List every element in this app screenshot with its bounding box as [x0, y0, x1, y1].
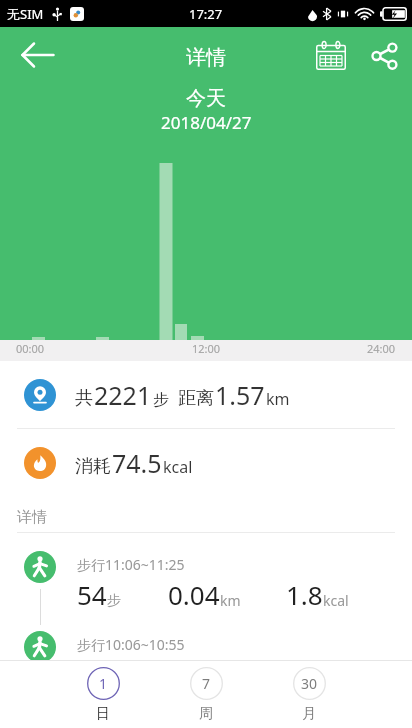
staticText: 日 [96, 705, 110, 723]
button[interactable]: 步行11:06~11:25 [0, 551, 412, 631]
staticText: 步 [107, 592, 121, 610]
staticText: 7 [202, 674, 211, 693]
staticText: kcal [163, 456, 193, 478]
staticText: 17:27 [189, 5, 223, 23]
staticText: 步行11:06~11:25 [77, 555, 185, 574]
button[interactable]: 消耗 [0, 429, 412, 496]
staticText: kcal [323, 591, 349, 610]
staticText: 2221 [94, 378, 152, 412]
staticText: 2018/04/27 [161, 111, 252, 134]
staticText: 详情 [186, 45, 226, 70]
button[interactable]: 共 [0, 361, 412, 428]
staticText: kcal [323, 671, 349, 690]
staticText: 1.8 [286, 577, 323, 612]
button[interactable]: Back [12, 29, 64, 81]
button[interactable]: 7 [171, 661, 241, 723]
staticText: 0.04 [168, 577, 220, 612]
staticText: 共 [75, 387, 93, 410]
button[interactable]: 1 [68, 661, 138, 723]
button[interactable]: Calendar [306, 31, 356, 81]
button[interactable]: 步行10:06~10:55 [0, 631, 412, 711]
staticText: 距离 [178, 387, 214, 410]
staticText: 今天 [186, 86, 226, 111]
staticText: km [220, 671, 241, 690]
staticText: 0.09 [168, 657, 220, 692]
staticText: 24:00 [367, 341, 396, 356]
staticText: 54 [77, 577, 107, 612]
staticText: km [220, 591, 241, 610]
staticText: 3.9 [286, 657, 323, 692]
button[interactable]: 30 [274, 661, 344, 723]
staticText: 12:00 [192, 341, 221, 356]
staticText: 周 [199, 705, 213, 723]
staticText: 步行10:06~10:55 [77, 635, 185, 654]
staticText: 月 [302, 705, 316, 723]
staticText: 1.57 [215, 378, 265, 412]
staticText: 00:00 [16, 341, 45, 356]
staticText: km [266, 388, 290, 410]
button[interactable]: Share [356, 31, 406, 81]
staticText: 1 [99, 674, 108, 693]
staticText: 步 [153, 390, 169, 410]
staticText: 74.5 [112, 446, 162, 480]
staticText: 30 [301, 674, 318, 693]
staticText: 消耗 [75, 455, 111, 478]
staticText: 120 [77, 657, 122, 692]
staticText: 详情 [17, 508, 47, 527]
staticText: 无SIM [7, 5, 44, 23]
